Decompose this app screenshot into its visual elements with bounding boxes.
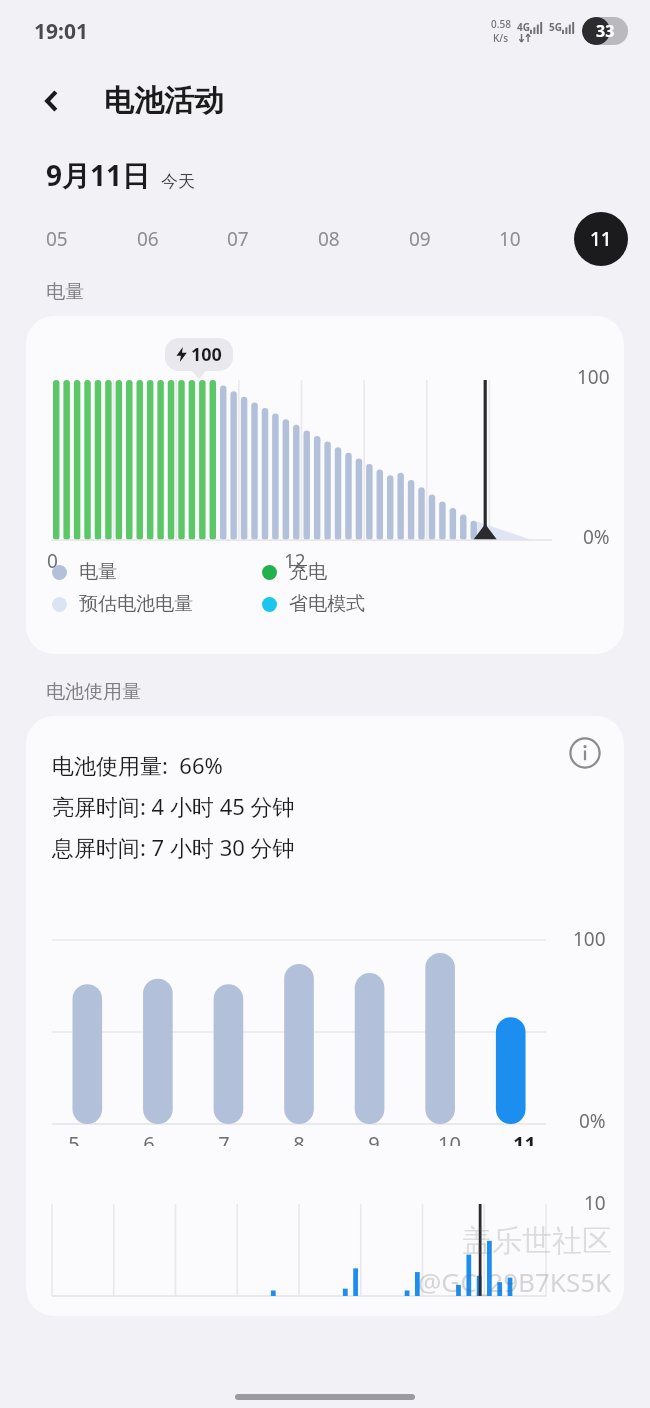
button[interactable]: 06 [121,212,175,266]
staticText: 亮屏时间: 4 小时 45 分钟 [52,791,295,821]
staticText: 电池使用量 [46,680,141,704]
staticText: 10 [438,1130,461,1146]
staticText: 4G [517,20,530,34]
staticText: 05 [46,226,68,252]
staticText: 电量 [79,560,117,584]
staticText: 0% [583,524,610,550]
staticText: 电量 [46,280,84,304]
button[interactable]: 08 [302,212,356,266]
button[interactable]: 07 [211,212,265,266]
staticText: 06 [137,226,159,252]
staticText: 8 [293,1130,305,1146]
button[interactable]: 10 [483,212,537,266]
staticText: 33 [596,20,615,42]
staticText: 息屏时间: 7 小时 30 分钟 [52,832,295,862]
staticText: 5G [549,20,562,34]
button[interactable]: 电池使用量: 66% [26,716,624,1316]
staticText: @GC_29B7KS5K [418,1264,612,1299]
staticText: 7 [218,1130,230,1146]
staticText: 0% [579,1108,606,1134]
staticText: 10 [584,1190,606,1216]
button[interactable]: 100 [26,316,624,654]
staticText: 5 [68,1130,80,1146]
button[interactable]: Back [28,77,76,125]
staticText: 电池使用量: 66% [52,750,223,780]
staticText: 9月11日 [46,156,151,194]
staticText: 省电模式 [289,592,365,616]
staticText: 100 [191,342,222,367]
staticText: 100 [573,926,606,952]
staticText: 10 [499,226,521,252]
staticText: 11 [513,1130,536,1146]
button[interactable]: 11 [574,212,628,266]
staticText: K/s [493,31,509,45]
staticText: 今天 [161,171,195,192]
button[interactable]: 09 [393,212,447,266]
staticText: 盖乐世社区 [462,1222,612,1260]
staticText: 0 [47,548,58,574]
staticText: 08 [318,226,340,252]
staticText: 100 [577,364,610,390]
staticText: 0.58 [491,17,511,31]
button[interactable]: Information [562,730,608,776]
staticText: 19:01 [34,17,88,46]
staticText: 6 [143,1130,155,1146]
staticText: 07 [227,226,249,252]
staticText: 11 [590,226,612,252]
staticText: 预估电池电量 [79,592,193,616]
staticText: 电池活动 [104,82,224,120]
staticText: 12 [284,548,306,574]
button[interactable]: 05 [30,212,84,266]
staticText: 09 [409,226,431,252]
staticText: 9 [368,1130,380,1146]
staticText: 充电 [289,560,327,584]
